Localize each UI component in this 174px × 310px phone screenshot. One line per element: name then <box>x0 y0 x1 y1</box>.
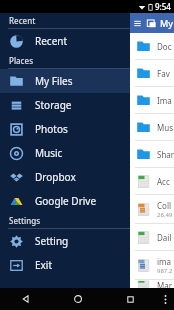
staticText: Photos <box>35 122 68 136</box>
button[interactable]: Back <box>0 288 52 310</box>
staticText: Dropbox <box>35 170 76 184</box>
button[interactable]: Music <box>0 141 130 165</box>
button[interactable]: Recent apps <box>104 288 156 310</box>
staticText: My Files <box>160 17 174 29</box>
button[interactable]: More options <box>156 288 174 310</box>
button[interactable]: Collection.ppt <box>131 195 174 223</box>
button[interactable]: Daily.xls <box>131 224 174 250</box>
staticText: My Files <box>35 74 73 88</box>
button[interactable]: Dropbox <box>0 165 130 189</box>
staticText: Google Drive <box>35 194 97 208</box>
staticText: image.png <box>157 256 174 267</box>
staticText: Recent <box>35 34 68 48</box>
staticText: Shared <box>157 149 174 160</box>
staticText: 26.49 KB <box>157 211 174 219</box>
staticText: Music <box>35 146 63 160</box>
button[interactable]: Documents <box>131 33 174 59</box>
staticText: Accounts.xls <box>157 176 174 187</box>
button[interactable]: image.png <box>131 251 174 279</box>
button[interactable]: Music <box>131 114 174 140</box>
staticText: Marks.xls <box>157 280 174 288</box>
staticText: Recent <box>9 15 36 26</box>
staticText: 9:54 <box>155 1 171 12</box>
staticText: Music <box>157 122 174 133</box>
staticText: 987.26 KB <box>157 267 174 275</box>
staticText: Places <box>9 55 34 66</box>
button[interactable]: Images <box>131 87 174 113</box>
staticText: Favorites <box>157 68 174 79</box>
staticText: Collection.ppt <box>157 200 174 211</box>
staticText: Daily.xls <box>157 232 174 243</box>
button[interactable]: Storage <box>0 93 130 117</box>
button[interactable]: Photos <box>0 117 130 141</box>
button[interactable]: Accounts.xls <box>131 168 174 194</box>
button[interactable]: Setting <box>0 229 130 253</box>
button[interactable]: Shared <box>131 141 174 167</box>
button[interactable]: Marks.xls <box>131 280 174 288</box>
button[interactable]: My Files <box>0 69 130 93</box>
button[interactable]: Open navigation drawer <box>131 17 144 30</box>
staticText: Storage <box>35 98 72 112</box>
button[interactable]: Recent <box>0 29 130 53</box>
staticText: Documents <box>157 41 174 52</box>
button[interactable]: Home <box>52 288 104 310</box>
button[interactable]: Exit <box>0 253 130 277</box>
staticText: Exit <box>35 258 53 272</box>
staticText: Images <box>157 95 174 106</box>
staticText: Settings <box>9 215 41 226</box>
button[interactable]: Favorites <box>131 60 174 86</box>
staticText: Setting <box>35 234 69 248</box>
button[interactable]: Google Drive <box>0 189 130 213</box>
